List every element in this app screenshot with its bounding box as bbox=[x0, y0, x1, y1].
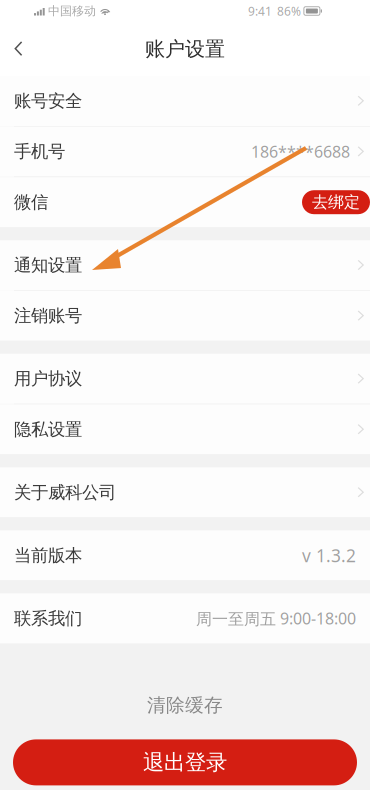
staticText: 退出登录 bbox=[143, 749, 227, 775]
button[interactable]: 隐私设置 bbox=[0, 404, 370, 454]
button[interactable]: 账号安全 bbox=[0, 76, 370, 126]
staticText: 周一至周五 9:00-18:00 bbox=[196, 608, 356, 629]
staticText: 隐私设置 bbox=[14, 419, 82, 440]
button[interactable]: 当前版本 bbox=[0, 530, 370, 580]
staticText: 当前版本 bbox=[14, 545, 82, 566]
button[interactable]: 联系我们 bbox=[0, 593, 370, 643]
staticText: 微信 bbox=[14, 192, 48, 213]
staticText: 中国移动 bbox=[48, 4, 96, 18]
button[interactable]: 注销账号 bbox=[0, 291, 370, 341]
button[interactable]: 返回 bbox=[0, 22, 39, 76]
button[interactable]: 退出登录 bbox=[13, 739, 357, 785]
staticText: 186****6688 bbox=[251, 141, 350, 162]
button[interactable]: 去绑定 bbox=[302, 190, 370, 214]
button[interactable]: 用户协议 bbox=[0, 354, 370, 404]
staticText: 账号安全 bbox=[14, 90, 82, 112]
staticText: 用户协议 bbox=[14, 368, 82, 389]
staticText: 86% bbox=[277, 3, 301, 19]
staticText: v 1.3.2 bbox=[302, 544, 356, 567]
button[interactable]: 手机号 bbox=[0, 127, 370, 177]
staticText: 注销账号 bbox=[14, 305, 82, 326]
staticText: 关于威科公司 bbox=[14, 482, 116, 503]
staticText: 手机号 bbox=[14, 141, 65, 162]
button[interactable]: 通知设置 bbox=[0, 240, 370, 290]
button[interactable]: 清除缓存 bbox=[0, 677, 370, 733]
button[interactable]: 关于威科公司 bbox=[0, 467, 370, 517]
staticText: 通知设置 bbox=[14, 255, 82, 276]
staticText: 账户设置 bbox=[145, 37, 225, 61]
staticText: 清除缓存 bbox=[147, 694, 223, 717]
staticText: 联系我们 bbox=[14, 608, 82, 629]
staticText: 去绑定 bbox=[312, 192, 360, 212]
staticText: 9:41 bbox=[248, 3, 272, 19]
